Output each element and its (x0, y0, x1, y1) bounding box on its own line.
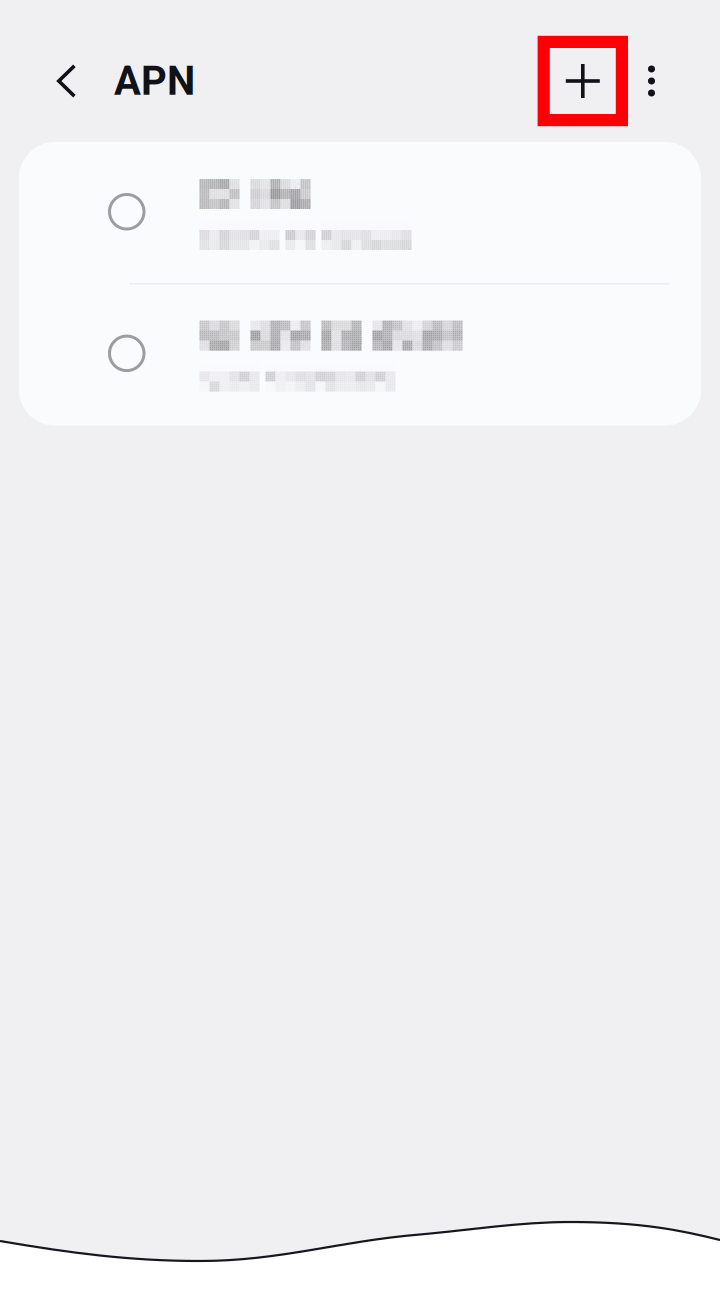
button[interactable]: Add APN (538, 20, 628, 142)
button[interactable]: APN entry (19, 285, 701, 426)
button[interactable]: Back (39, 36, 94, 126)
staticText: APN (114, 58, 195, 104)
button[interactable]: More options (639, 20, 664, 142)
button[interactable]: APN entry (19, 142, 701, 283)
